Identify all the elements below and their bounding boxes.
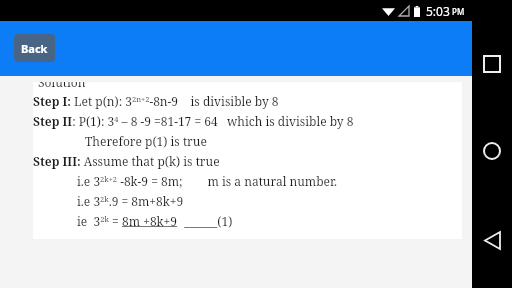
staticText: Solution — [38, 82, 86, 90]
staticText: 5:03 — [426, 3, 450, 19]
staticText: PM — [452, 6, 465, 17]
button[interactable]: Back — [475, 223, 509, 257]
staticText: 8m +8k+9 — [122, 213, 178, 229]
staticText: Therefore p(1) is true — [85, 133, 207, 149]
staticText: Step II: P(1): 34 – 8 -9 =81-17 = 64 whi… — [33, 113, 354, 129]
staticText: i.e 32k.9 = 8m+8k+9 — [77, 193, 184, 209]
staticText: Step III: Assume that p(k) is true — [33, 153, 220, 169]
button[interactable]: Recent apps — [475, 47, 509, 81]
staticText: i.e 32k+2 -8k-9 = 8m; m is a natural num… — [77, 173, 338, 189]
staticText: Back — [21, 41, 48, 56]
staticText: Step I: Let p(n): 32n+2-8n-9 is divisibl… — [33, 93, 279, 109]
staticText: ______(1) — [178, 213, 233, 229]
button[interactable]: Back — [14, 34, 55, 62]
button[interactable]: Home — [475, 134, 509, 168]
staticText: ie 32k = — [77, 213, 122, 229]
